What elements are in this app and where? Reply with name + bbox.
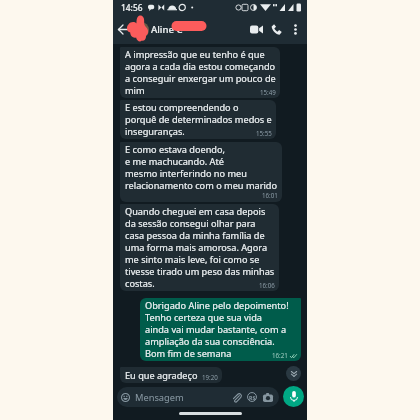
staticText: Eu que agradeço bbox=[125, 369, 198, 382]
staticText: 15:49 bbox=[260, 88, 276, 96]
button[interactable]: More options bbox=[287, 21, 304, 38]
button[interactable]: E estou compreendendo o porquê de determ… bbox=[120, 100, 276, 139]
staticText: relacionamento com o meu marido bbox=[125, 180, 278, 192]
staticText: Bom fim de semana bbox=[145, 348, 232, 360]
staticText: E como estava doendo, e me machucando. A… bbox=[125, 144, 247, 180]
staticText: 15:55 bbox=[256, 129, 272, 137]
button[interactable]: Video call bbox=[247, 20, 266, 39]
staticText: inseguranças. bbox=[125, 126, 185, 138]
button[interactable]: Emoji bbox=[117, 387, 279, 407]
button[interactable]: Obrigado Aline pelo depoimento! Tenho ce… bbox=[140, 298, 301, 361]
button[interactable]: Camera bbox=[262, 391, 274, 403]
staticText: Obrigado Aline pelo depoimento! Tenho ce… bbox=[145, 300, 289, 348]
staticText: mim bbox=[125, 85, 145, 97]
staticText: 16:21 bbox=[272, 351, 288, 359]
staticText: R$ bbox=[249, 394, 256, 401]
button[interactable]: Back bbox=[115, 21, 132, 38]
button[interactable]: Quando cheguei em casa depois da sessão … bbox=[120, 204, 279, 291]
staticText: 14:56 bbox=[121, 2, 143, 13]
button[interactable]: Attach bbox=[230, 391, 242, 403]
staticText: Aline C bbox=[151, 23, 183, 36]
button[interactable]: Eu que agradeço bbox=[120, 367, 222, 383]
button[interactable]: Payments bbox=[246, 391, 258, 403]
other: Emoji bbox=[121, 393, 130, 402]
button[interactable]: A impressão que eu tenho é que agora a c… bbox=[120, 47, 280, 98]
staticText: 19:20 bbox=[202, 373, 218, 381]
staticText: 16:01 bbox=[262, 191, 278, 199]
button[interactable]: Call bbox=[267, 20, 286, 39]
staticText: Mensagem bbox=[135, 391, 184, 404]
staticText: 16:06 bbox=[259, 281, 275, 289]
button[interactable]: Voice message bbox=[283, 386, 304, 407]
button[interactable]: E como estava doendo, e me machucando. A… bbox=[120, 142, 282, 202]
button[interactable]: Scroll to bottom bbox=[286, 366, 301, 381]
staticText: Quando cheguei em casa depois da sessão … bbox=[125, 206, 275, 278]
staticText: E estou compreendendo o porquê de determ… bbox=[125, 102, 272, 126]
staticText: costas. bbox=[125, 278, 155, 290]
staticText: A impressão que eu tenho é que agora a c… bbox=[125, 49, 276, 85]
